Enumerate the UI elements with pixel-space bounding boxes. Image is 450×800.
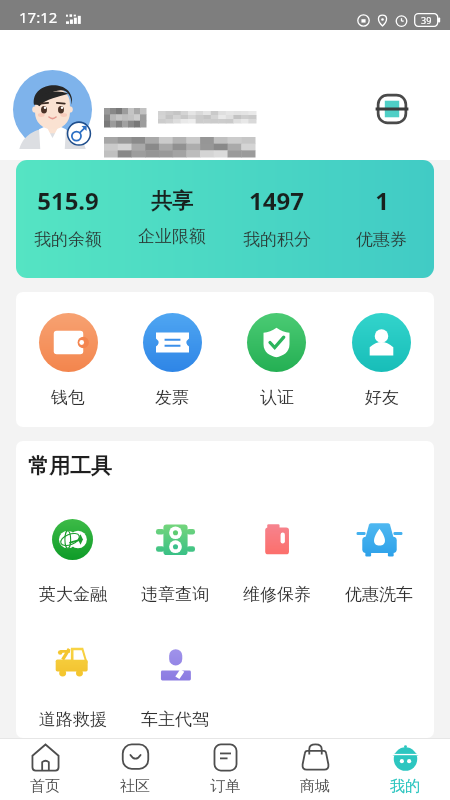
staticText: 优惠洗车 — [345, 584, 413, 605]
staticText: 商城 — [300, 777, 330, 796]
button[interactable]: 共享 — [120, 160, 224, 276]
button[interactable]: 钱包 — [16, 313, 120, 408]
staticText: 订单 — [210, 777, 240, 796]
button[interactable]: 车主代驾 — [124, 644, 226, 730]
staticText: 好友 — [365, 387, 399, 408]
staticText: 社区 — [120, 777, 150, 796]
staticText: 共享 — [151, 188, 193, 214]
button[interactable]: 英大金融 — [21, 519, 124, 605]
button[interactable]: 道路救援 — [21, 644, 124, 730]
staticText: 1 — [375, 184, 389, 217]
button[interactable]: 认证 — [224, 313, 329, 408]
button[interactable]: 社区 — [90, 739, 180, 800]
staticText: 我的余额 — [34, 229, 102, 250]
button[interactable]: 515.9 — [16, 160, 120, 276]
button[interactable]: 我的 — [360, 739, 450, 800]
button[interactable]: 发票 — [120, 313, 224, 408]
button[interactable]: Profile avatar — [13, 70, 92, 149]
staticText: 维修保养 — [243, 584, 311, 605]
staticText: 违章查询 — [141, 584, 209, 605]
staticText: 17:12 — [19, 7, 58, 27]
staticText: 车主代驾 — [141, 709, 209, 730]
button[interactable]: 违章查询 — [124, 519, 226, 605]
button[interactable]: 优惠洗车 — [328, 519, 430, 605]
staticText: 我的积分 — [243, 229, 311, 250]
staticText: 首页 — [30, 777, 60, 796]
staticText: 道路救援 — [39, 709, 107, 730]
button[interactable]: 首页 — [0, 739, 90, 800]
button[interactable]: Scan QR code — [374, 91, 410, 127]
staticText: 1497 — [249, 184, 304, 217]
button[interactable]: 1 — [329, 160, 434, 276]
button[interactable]: 1497 — [224, 160, 329, 276]
staticText: 钱包 — [51, 387, 85, 408]
button[interactable]: 好友 — [329, 313, 434, 408]
staticText: 企业限额 — [138, 226, 206, 247]
staticText: 常用工具 — [28, 453, 112, 479]
button[interactable]: 维修保养 — [226, 519, 328, 605]
staticText: 515.9 — [37, 184, 99, 217]
staticText: 英大金融 — [39, 584, 107, 605]
staticText: 我的 — [390, 777, 420, 796]
staticText: 认证 — [260, 387, 294, 408]
staticText: 优惠券 — [356, 229, 407, 250]
staticText: 39 — [421, 14, 432, 26]
button[interactable]: 订单 — [180, 739, 270, 800]
button[interactable]: 商城 — [270, 739, 360, 800]
staticText: 发票 — [155, 387, 189, 408]
